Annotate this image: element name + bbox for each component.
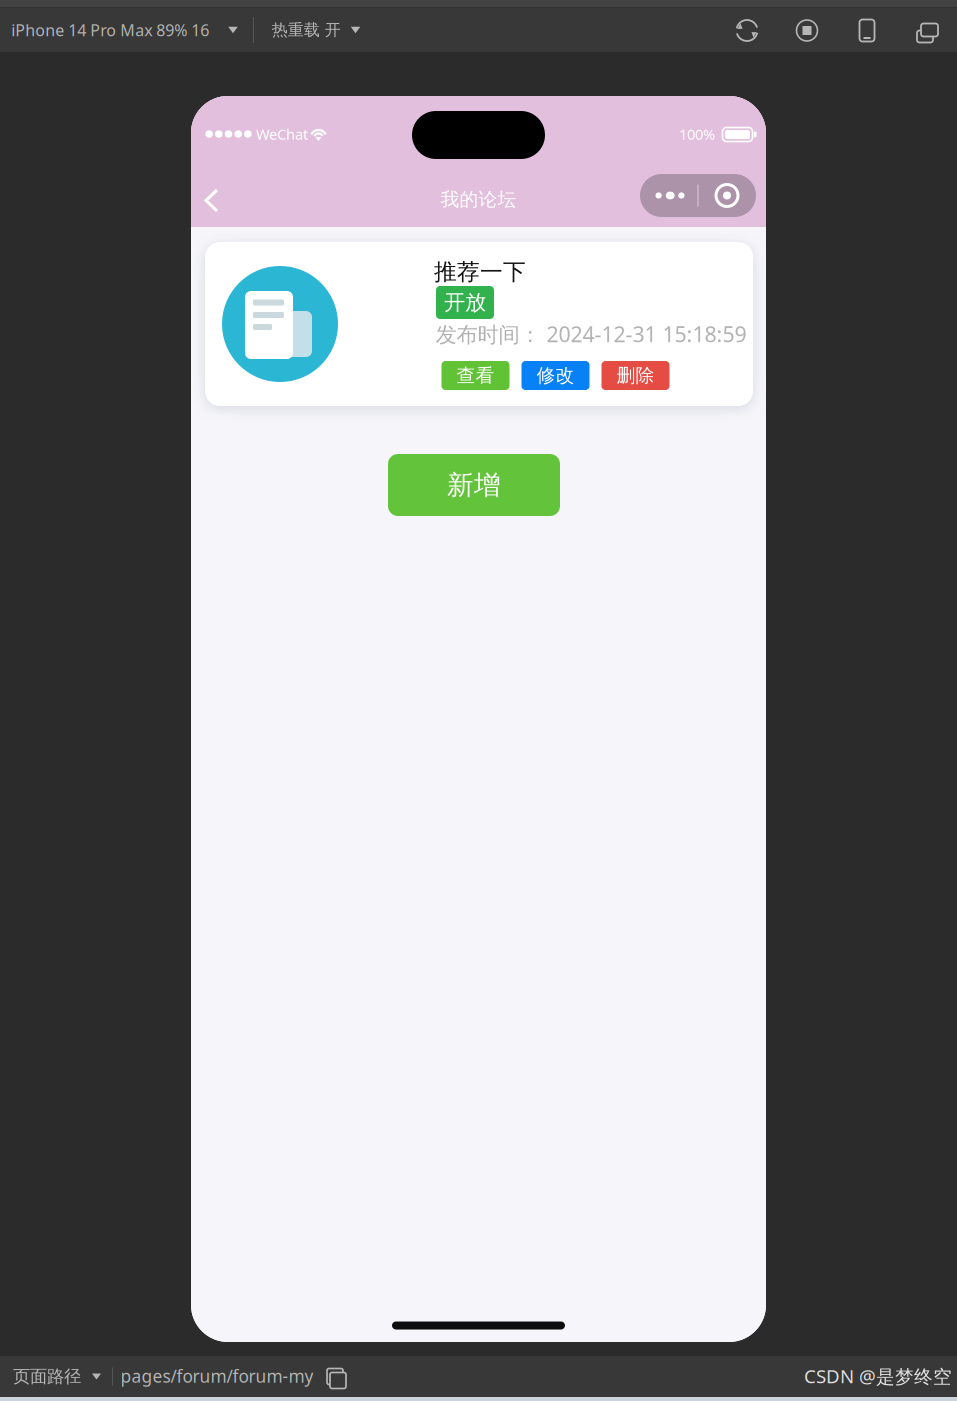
staticText: 查看 bbox=[456, 364, 494, 387]
button[interactable]: 新增 bbox=[388, 454, 560, 516]
button[interactable]: 修改 bbox=[521, 361, 589, 390]
staticText: WeChat bbox=[256, 124, 308, 144]
staticText: 推荐一下 bbox=[434, 258, 526, 286]
button[interactable]: Device simulator bbox=[847, 10, 887, 50]
staticText: 100% bbox=[679, 124, 715, 144]
staticText: 我的论坛 bbox=[440, 188, 516, 211]
staticText: 删除 bbox=[616, 364, 654, 387]
staticText: 新增 bbox=[447, 469, 501, 501]
staticText: 发布时间： 2024-12-31 15:18:59 bbox=[435, 320, 746, 348]
button[interactable]: Copy page path bbox=[322, 1363, 348, 1389]
button[interactable]: iPhone 14 Pro Max 89% 16 bbox=[0, 8, 256, 51]
staticText: iPhone 14 Pro Max 89% 16 bbox=[11, 19, 209, 41]
button[interactable]: Stop bbox=[787, 10, 827, 50]
button[interactable]: Back bbox=[188, 175, 234, 225]
staticText: 页面路径 bbox=[13, 1366, 81, 1387]
staticText: 修改 bbox=[536, 364, 574, 387]
button[interactable]: Detach window bbox=[907, 10, 947, 50]
button[interactable]: 页面路径 bbox=[1, 1359, 113, 1393]
button[interactable]: 查看 bbox=[441, 361, 509, 390]
button[interactable]: Refresh bbox=[727, 10, 767, 50]
button[interactable]: 热重载 开 bbox=[250, 8, 382, 51]
button[interactable]: 删除 bbox=[601, 361, 669, 390]
staticText: 热重载 开 bbox=[272, 20, 341, 40]
staticText: CSDN @是梦终空 bbox=[804, 1364, 952, 1388]
staticText: pages/forum/forum-my bbox=[120, 1364, 313, 1387]
staticText: 开放 bbox=[444, 289, 486, 316]
